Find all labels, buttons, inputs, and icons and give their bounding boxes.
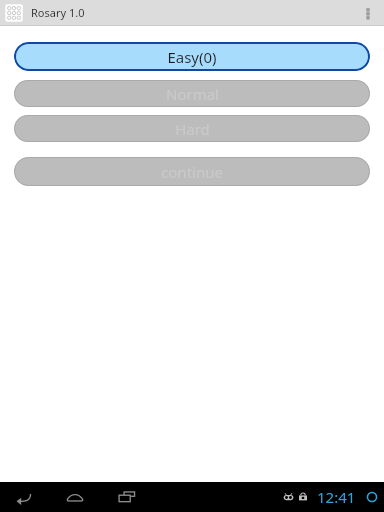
button[interactable]: Hard	[14, 115, 370, 142]
button[interactable]: Home	[60, 482, 90, 512]
button[interactable]: More options	[356, 1, 380, 25]
button[interactable]: Easy(0)	[14, 42, 370, 71]
staticText: Rosary 1.0	[31, 5, 85, 20]
button[interactable]: continue	[14, 157, 370, 186]
staticText: Normal	[166, 84, 219, 104]
button[interactable]: Normal	[14, 80, 370, 107]
staticText: Hard	[175, 119, 210, 139]
staticText: continue	[161, 162, 223, 182]
staticText: Easy(0)	[167, 47, 217, 67]
button[interactable]: Back	[8, 482, 38, 512]
staticText: 12:41	[317, 487, 356, 507]
button[interactable]: Recent apps	[112, 482, 142, 512]
